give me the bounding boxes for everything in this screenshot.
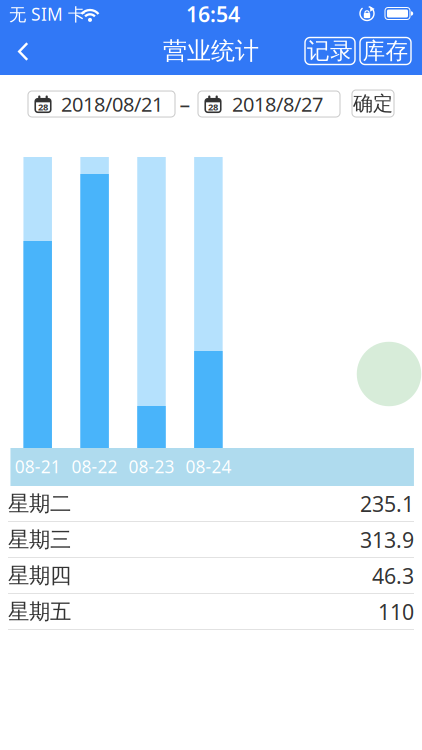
button[interactable]: 记录 — [305, 37, 355, 64]
staticText: 08-22 — [72, 455, 118, 478]
button[interactable]: 28 — [28, 91, 175, 117]
staticText: 235.1 — [360, 490, 414, 518]
staticText: 库存 — [362, 37, 408, 65]
staticText: 2018/08/21 — [61, 91, 163, 117]
staticText: 28 — [38, 101, 48, 113]
button[interactable]: 确定 — [352, 90, 394, 117]
staticText: 无 SIM 卡 — [9, 2, 85, 25]
staticText: 记录 — [307, 37, 353, 65]
staticText: 110 — [378, 598, 414, 626]
staticText: 星期三 — [8, 527, 71, 553]
staticText: 08-23 — [128, 455, 174, 478]
staticText: 确定 — [353, 91, 393, 116]
staticText: 星期四 — [8, 563, 71, 589]
staticText: 2018/8/27 — [232, 91, 323, 117]
staticText: 星期二 — [8, 491, 71, 517]
staticText: 16:54 — [186, 0, 240, 28]
staticText: 46.3 — [372, 562, 414, 590]
staticText: 28 — [208, 101, 218, 113]
staticText: – — [179, 90, 190, 118]
button[interactable]: Actions — [357, 342, 421, 406]
button[interactable]: 库存 — [360, 37, 411, 64]
button[interactable]: 28 — [198, 91, 340, 117]
staticText: 星期五 — [8, 599, 71, 625]
staticText: 08-24 — [185, 455, 231, 478]
staticText: 营业统计 — [163, 36, 259, 66]
staticText: 08-21 — [15, 455, 61, 478]
button[interactable]: Back — [6, 31, 40, 71]
staticText: 313.9 — [360, 526, 414, 554]
